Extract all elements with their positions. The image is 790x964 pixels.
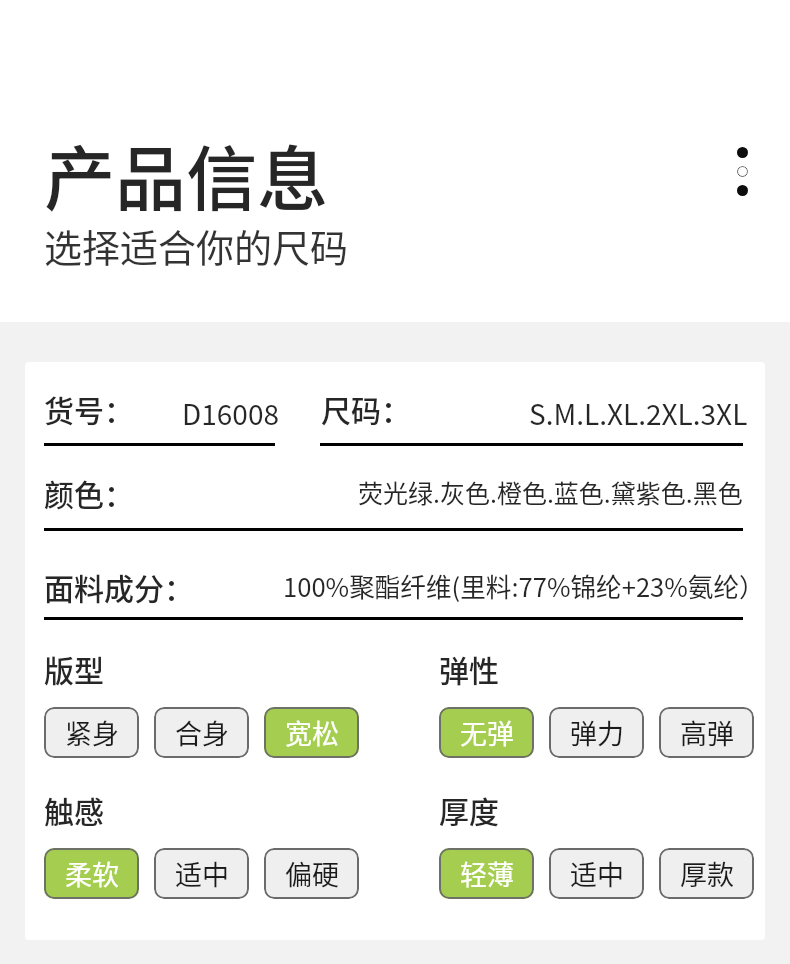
button[interactable]: 轻薄 (439, 848, 534, 899)
staticText: 弹力 (570, 713, 624, 752)
button[interactable]: 偏硬 (264, 848, 359, 899)
staticText: 适中 (570, 854, 624, 893)
staticText: 柔软 (65, 854, 119, 893)
button[interactable]: 合身 (154, 707, 249, 758)
staticText: 宽松 (285, 713, 339, 752)
staticText: 高弹 (680, 713, 734, 752)
staticText: 货号： (44, 387, 134, 430)
button[interactable]: 无弹 (439, 707, 534, 758)
staticText: 产品信息 (44, 123, 329, 226)
staticText: 厚款 (680, 854, 734, 893)
staticText: 触感 (44, 788, 104, 831)
button[interactable]: 适中 (154, 848, 249, 899)
button[interactable]: More options (726, 147, 758, 211)
button[interactable]: 适中 (549, 848, 644, 899)
staticText: 无弹 (460, 713, 514, 752)
staticText: 厚度 (439, 788, 499, 831)
staticText: S.M.L.XL.2XL.3XL (529, 393, 748, 434)
staticText: 轻薄 (460, 854, 514, 893)
staticText: 100%聚酯纤维(里料:77%锦纶+23%氨纶） (283, 567, 765, 604)
staticText: 荧光绿.灰色.橙色.蓝色.黛紫色.黑色 (358, 474, 743, 510)
button[interactable]: 柔软 (44, 848, 139, 899)
button[interactable]: 厚款 (659, 848, 754, 899)
button[interactable]: 紧身 (44, 707, 139, 758)
button[interactable]: 宽松 (264, 707, 359, 758)
staticText: 合身 (175, 713, 229, 752)
staticText: 面料成分： (44, 565, 194, 608)
staticText: 偏硬 (285, 854, 339, 893)
staticText: 紧身 (65, 713, 119, 752)
staticText: 版型 (44, 647, 104, 690)
button[interactable]: 高弹 (659, 707, 754, 758)
staticText: 颜色： (44, 471, 134, 514)
staticText: 选择适合你的尺码 (44, 218, 349, 273)
staticText: 尺码： (321, 387, 411, 430)
staticText: 弹性 (439, 647, 499, 690)
button[interactable]: 弹力 (549, 707, 644, 758)
staticText: D16008 (182, 393, 279, 434)
staticText: 适中 (175, 854, 229, 893)
